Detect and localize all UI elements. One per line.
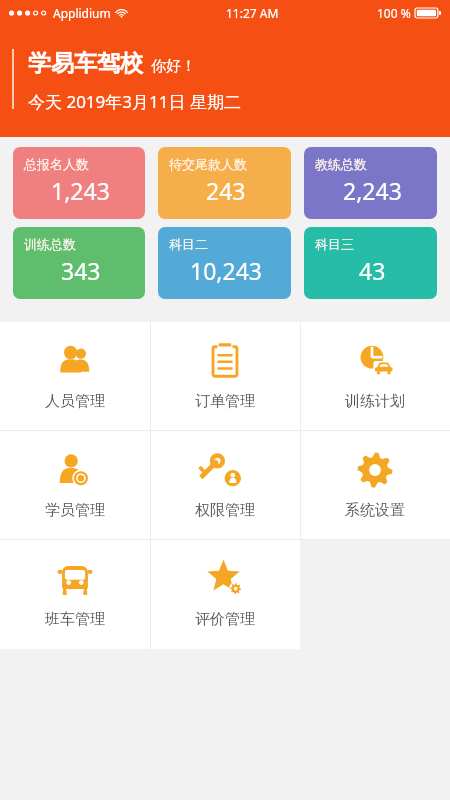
other: 训练计划 (356, 342, 394, 380)
staticText: 学员管理 (45, 501, 105, 520)
button[interactable]: 训练计划 (300, 322, 450, 431)
staticText: 评价管理 (195, 610, 255, 629)
staticText: 教练总数 (315, 156, 367, 172)
staticText: 今天 2019年3月11日 星期二 (28, 90, 241, 113)
other: 评价管理 (206, 560, 244, 598)
staticText: 订单管理 (195, 392, 255, 411)
button[interactable]: 学员管理 (0, 431, 150, 540)
staticText: 343 (61, 255, 101, 286)
other: 人员管理 (56, 342, 94, 380)
staticText: 总报名人数 (24, 156, 89, 172)
staticText: 权限管理 (195, 501, 255, 520)
button[interactable]: 班车管理 (0, 540, 150, 649)
staticText: 11:27 AM (226, 5, 279, 21)
button[interactable]: 科目三 (304, 227, 437, 299)
staticText: 你好！ (151, 57, 196, 76)
staticText: 待交尾款人数 (169, 156, 247, 172)
other: 权限管理 (206, 451, 244, 489)
staticText: 43 (359, 255, 386, 286)
staticText: 科目三 (315, 236, 354, 252)
other: 订单管理 (206, 342, 244, 380)
button[interactable]: 订单管理 (150, 322, 300, 431)
staticText: 科目二 (169, 236, 208, 252)
button[interactable]: 总报名人数 (13, 147, 145, 219)
button[interactable]: 待交尾款人数 (158, 147, 291, 219)
button[interactable]: 权限管理 (150, 431, 300, 540)
staticText: 2,243 (343, 175, 402, 206)
button[interactable]: 训练总数 (13, 227, 145, 299)
staticText: 训练总数 (24, 236, 76, 252)
staticText: 243 (206, 175, 246, 206)
button[interactable]: 人员管理 (0, 322, 150, 431)
staticText: 学易车驾校 (28, 49, 143, 78)
staticText: 班车管理 (45, 610, 105, 629)
staticText: 100 % (377, 5, 411, 21)
other: 系统设置 (356, 451, 394, 489)
staticText: 10,243 (190, 255, 262, 286)
button[interactable]: 系统设置 (300, 431, 450, 540)
button[interactable]: 科目二 (158, 227, 291, 299)
other: 学员管理 (56, 451, 94, 489)
staticText: 1,243 (51, 175, 110, 206)
button[interactable]: 评价管理 (150, 540, 300, 649)
other: 班车管理 (56, 560, 94, 598)
staticText: 人员管理 (45, 392, 105, 411)
button[interactable]: 教练总数 (304, 147, 437, 219)
staticText: 系统设置 (345, 501, 405, 520)
staticText: Applidium (53, 5, 111, 21)
staticText: 训练计划 (345, 392, 405, 411)
